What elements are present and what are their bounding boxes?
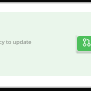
staticText: cy to update bbox=[0, 38, 32, 46]
button[interactable]: Sync to update bbox=[77, 36, 91, 51]
